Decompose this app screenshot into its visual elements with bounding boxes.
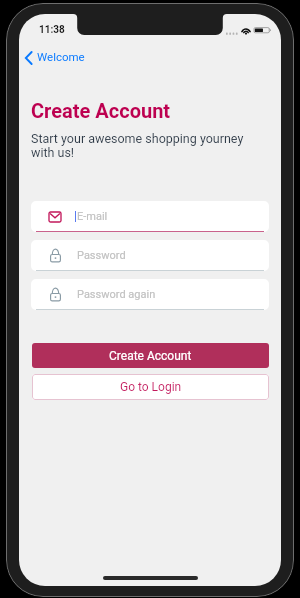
staticText: Create Account xyxy=(31,99,171,122)
other: Password xyxy=(50,288,61,301)
other: E-mail xyxy=(49,212,61,222)
staticText: E-mail xyxy=(77,210,108,223)
button[interactable]: Password xyxy=(31,279,269,310)
button[interactable]: Create Account xyxy=(32,343,269,368)
staticText: Welcome xyxy=(37,50,85,63)
staticText: Go to Login xyxy=(120,380,182,394)
other: Password xyxy=(50,249,61,262)
button[interactable]: Password xyxy=(31,240,269,271)
staticText: Create Account xyxy=(109,349,192,363)
button[interactable]: Go to Login xyxy=(32,374,269,400)
staticText: Password xyxy=(77,249,126,262)
staticText: 11:38 xyxy=(39,24,65,36)
button[interactable]: Welcome xyxy=(21,48,88,68)
staticText: Password again xyxy=(77,288,156,301)
staticText: Start your awesome shopping yourney with… xyxy=(31,131,253,160)
button[interactable]: E-mail xyxy=(31,201,269,232)
